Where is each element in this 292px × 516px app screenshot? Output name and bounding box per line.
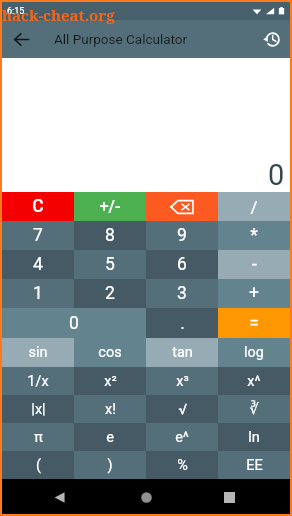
staticText: All Purpose Calculator — [54, 31, 188, 47]
button[interactable]: 1/x — [2, 367, 74, 395]
button[interactable]: tan — [146, 338, 218, 367]
staticText: + — [249, 283, 259, 304]
button[interactable]: 0 — [2, 308, 146, 338]
staticText: cos — [98, 344, 122, 361]
staticText: +/- — [99, 197, 121, 216]
button[interactable]: ∛ — [218, 395, 290, 423]
button[interactable]: 7 — [2, 221, 74, 250]
button[interactable]: 1 — [2, 279, 74, 308]
staticText: . — [180, 313, 185, 334]
staticText: * — [250, 225, 258, 246]
staticText: π — [34, 429, 43, 446]
staticText: x^ — [247, 373, 261, 390]
button[interactable]: . — [146, 308, 218, 338]
staticText: ) — [107, 457, 113, 474]
button[interactable]: 8 — [74, 221, 146, 250]
button[interactable]: + — [218, 279, 290, 308]
button[interactable]: ln — [218, 423, 290, 451]
button[interactable]: x² — [74, 367, 146, 395]
staticText: e — [106, 429, 114, 446]
staticText: 5 — [105, 254, 115, 275]
staticText: ln — [248, 429, 260, 446]
staticText: 6 — [177, 254, 187, 275]
staticText: sin — [28, 344, 48, 361]
button[interactable]: Home — [133, 484, 159, 510]
button[interactable]: ) — [74, 451, 146, 479]
staticText: 3 — [177, 283, 187, 304]
staticText: tan — [172, 344, 193, 361]
staticText: x! — [105, 401, 116, 418]
staticText: / — [250, 197, 258, 217]
staticText: √ — [178, 401, 187, 418]
button[interactable]: History — [252, 20, 290, 58]
button[interactable]: * — [218, 221, 290, 250]
staticText: e^ — [175, 429, 189, 446]
button[interactable]: e^ — [146, 423, 218, 451]
button[interactable]: sin — [2, 338, 74, 367]
button[interactable]: log — [218, 338, 290, 367]
button[interactable]: / — [218, 192, 290, 221]
button[interactable]: cos — [74, 338, 146, 367]
staticText: 8 — [105, 225, 115, 246]
staticText: 6:15 — [7, 6, 25, 17]
button[interactable]: EE — [218, 451, 290, 479]
staticText: x² — [104, 373, 117, 390]
staticText: 2 — [105, 283, 115, 304]
staticText: hack-cheat.org — [2, 5, 115, 25]
button[interactable]: x! — [74, 395, 146, 423]
staticText: 9 — [177, 225, 187, 246]
staticText: 7 — [33, 225, 43, 246]
staticText: ( — [36, 457, 41, 474]
staticText: EE — [246, 457, 263, 474]
button[interactable]: 2 — [74, 279, 146, 308]
staticText: 0 — [268, 158, 285, 192]
button[interactable]: Recent apps — [216, 484, 242, 510]
button[interactable]: 9 — [146, 221, 218, 250]
button[interactable]: e — [74, 423, 146, 451]
staticText: - — [252, 254, 257, 275]
staticText: C — [32, 196, 44, 217]
button[interactable]: ( — [2, 451, 74, 479]
staticText: |x| — [31, 401, 46, 418]
button[interactable]: x^ — [218, 367, 290, 395]
button[interactable]: √ — [146, 395, 218, 423]
button[interactable]: Backspace — [146, 192, 218, 221]
button[interactable]: 6 — [146, 250, 218, 279]
staticText: 4 — [33, 254, 43, 275]
button[interactable]: Navigate up — [2, 20, 40, 58]
button[interactable]: +/- — [74, 192, 146, 221]
button[interactable]: 5 — [74, 250, 146, 279]
staticText: 1/x — [27, 373, 49, 390]
button[interactable]: 3 — [146, 279, 218, 308]
staticText: = — [249, 313, 259, 334]
button[interactable]: % — [146, 451, 218, 479]
staticText: 0 — [69, 313, 79, 334]
button[interactable]: π — [2, 423, 74, 451]
button[interactable]: Back — [46, 484, 72, 510]
button[interactable]: 4 — [2, 250, 74, 279]
staticText: 1 — [33, 283, 43, 304]
button[interactable]: C — [2, 192, 74, 221]
staticText: x³ — [176, 373, 189, 390]
staticText: ∛ — [249, 401, 259, 418]
staticText: % — [177, 457, 188, 474]
button[interactable]: x³ — [146, 367, 218, 395]
staticText: log — [244, 344, 264, 361]
button[interactable]: - — [218, 250, 290, 279]
button[interactable]: = — [218, 308, 290, 338]
button[interactable]: |x| — [2, 395, 74, 423]
